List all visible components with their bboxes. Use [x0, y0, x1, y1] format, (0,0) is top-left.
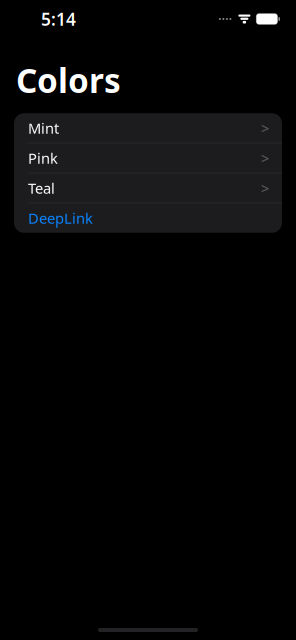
staticText: Colors	[16, 58, 121, 102]
button[interactable]: Mint	[14, 113, 282, 143]
staticText: 5:14	[41, 7, 76, 30]
staticText: Pink	[28, 148, 58, 168]
staticText: >	[261, 148, 269, 168]
staticText: Teal	[28, 178, 55, 198]
button[interactable]: Pink	[14, 143, 282, 173]
button[interactable]: DeepLink	[14, 203, 282, 233]
staticText: >	[261, 178, 269, 198]
button[interactable]: Teal	[14, 173, 282, 203]
staticText: Mint	[28, 118, 59, 138]
staticText: >	[261, 118, 269, 138]
staticText: DeepLink	[28, 208, 93, 228]
